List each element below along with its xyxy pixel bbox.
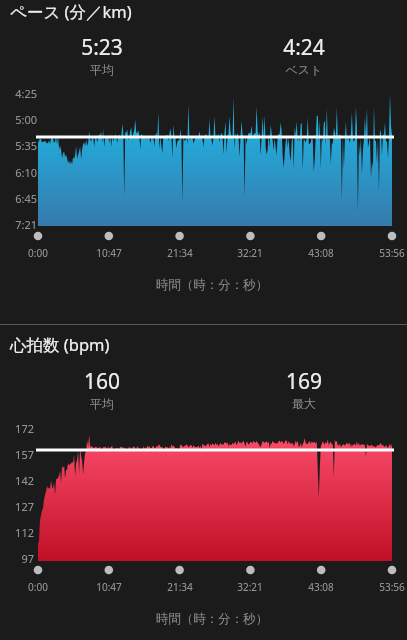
staticText: 6:45 — [0, 191, 37, 206]
staticText: 時間（時：分：秒） — [72, 611, 352, 627]
staticText: 0:00 — [0, 580, 178, 594]
staticText: 160 — [0, 367, 242, 396]
staticText: 4:24 — [164, 33, 407, 62]
staticText: 0:00 — [0, 246, 178, 260]
staticText: 平均 — [0, 62, 242, 77]
staticText: 127 — [0, 499, 34, 514]
staticText: ベスト — [164, 62, 407, 77]
staticText: 時間（時：分：秒） — [72, 277, 352, 293]
staticText: 平均 — [0, 396, 242, 411]
staticText: ペース (分／km) — [10, 0, 132, 23]
staticText: 112 — [0, 525, 34, 540]
staticText: 10:47 — [0, 580, 249, 594]
staticText: 32:21 — [110, 580, 390, 594]
staticText: 10:47 — [0, 246, 249, 260]
staticText: 172 — [0, 421, 34, 436]
staticText: 169 — [164, 367, 407, 396]
staticText: 最大 — [164, 396, 407, 411]
staticText: 5:35 — [0, 138, 37, 153]
staticText: 21:34 — [40, 246, 320, 260]
staticText: 43:08 — [181, 246, 407, 260]
staticText: 5:23 — [0, 33, 242, 62]
staticText: 心拍数 (bpm) — [10, 333, 110, 356]
staticText: 32:21 — [110, 246, 390, 260]
staticText: 157 — [0, 447, 34, 462]
staticText: 142 — [0, 473, 34, 488]
staticText: 43:08 — [181, 580, 407, 594]
staticText: 5:00 — [0, 112, 37, 127]
staticText: 53:56 — [252, 246, 407, 260]
staticText: 4:25 — [0, 86, 37, 101]
staticText: 21:34 — [40, 580, 320, 594]
staticText: 7:21 — [0, 217, 37, 232]
staticText: 97 — [0, 551, 34, 566]
staticText: 6:10 — [0, 165, 37, 180]
staticText: 53:56 — [252, 580, 407, 594]
